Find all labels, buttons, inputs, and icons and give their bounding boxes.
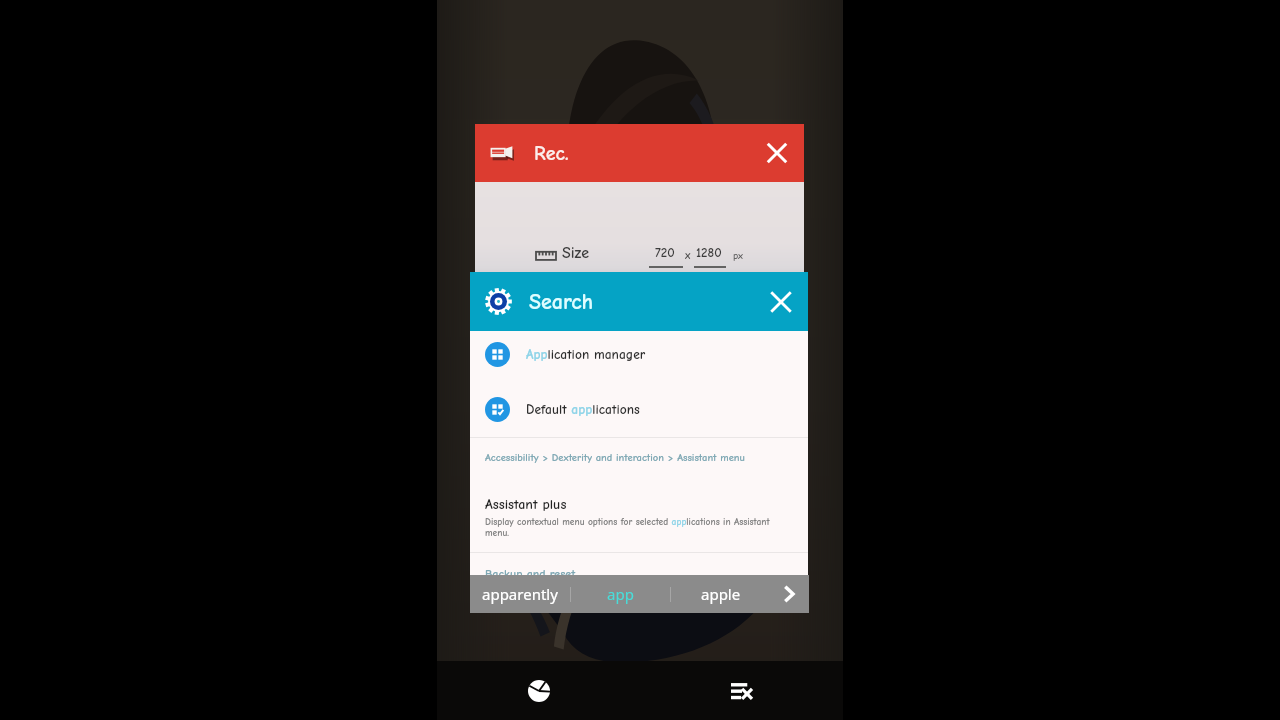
staticText: Application manager [526,347,646,363]
staticText: Assistant plus [485,496,567,512]
button[interactable]: app [571,575,670,613]
staticText: apparently [482,584,558,604]
staticText: Rec. [534,142,569,165]
button[interactable]: Close search [759,280,803,324]
button[interactable]: Close Rec [755,131,799,175]
staticText: Size [562,244,590,262]
button[interactable]: Application manager [470,331,808,378]
button[interactable]: Clear all [640,661,843,720]
staticText: Search [529,289,594,314]
staticText: x [685,249,691,262]
staticText: Backup and reset [485,567,576,581]
button[interactable]: Default applications [470,386,808,433]
button[interactable]: Accessibility > Dexterity and interactio… [470,438,808,552]
staticText: 720 [655,245,675,260]
button[interactable]: More suggestions [770,575,809,613]
staticText: Default applications [526,402,640,418]
staticText: 1280 [696,245,722,260]
button[interactable]: Overview [437,661,640,720]
button[interactable]: Rec. [475,124,804,182]
button[interactable]: apple [671,575,770,613]
staticText: app [607,584,634,604]
staticText: px [733,250,743,262]
staticText: apple [701,584,741,604]
staticText: Display contextual menu options for sele… [485,516,785,538]
button[interactable]: Backup and reset [470,553,808,611]
staticText: Accessibility > Dexterity and interactio… [485,452,745,464]
button[interactable]: Search [470,272,808,331]
button[interactable]: apparently [470,575,570,613]
